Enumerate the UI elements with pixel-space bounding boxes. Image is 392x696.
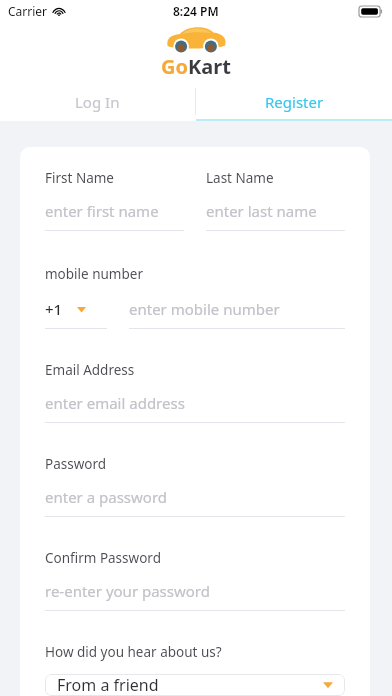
- staticText: 8:24 PM: [173, 3, 219, 19]
- staticText: GoKart: [161, 53, 231, 80]
- staticText: enter last name: [206, 201, 317, 221]
- button[interactable]: Last Name: [206, 169, 345, 231]
- button[interactable]: First Name: [45, 169, 184, 231]
- button[interactable]: Confirm Password: [45, 549, 345, 611]
- staticText: enter mobile number: [129, 299, 280, 319]
- staticText: enter first name: [45, 201, 159, 221]
- staticText: Email Address: [45, 361, 135, 379]
- button[interactable]: From a friend: [45, 674, 345, 696]
- staticText: enter email address: [45, 393, 185, 413]
- button[interactable]: Password: [45, 455, 345, 517]
- staticText: How did you hear about us?: [45, 643, 222, 661]
- button[interactable]: Email Address: [45, 361, 345, 423]
- staticText: Carrier: [8, 3, 48, 19]
- staticText: +1: [45, 299, 63, 319]
- staticText: Password: [45, 455, 107, 473]
- staticText: re-enter your password: [45, 581, 210, 601]
- staticText: enter a password: [45, 487, 168, 507]
- staticText: Register: [265, 92, 324, 112]
- button[interactable]: Register: [196, 82, 392, 121]
- staticText: Confirm Password: [45, 549, 161, 567]
- other: Open dropdown: [323, 680, 333, 690]
- button[interactable]: enter mobile number: [129, 299, 345, 329]
- staticText: mobile number: [45, 265, 143, 283]
- staticText: From a friend: [57, 674, 159, 696]
- staticText: First Name: [45, 169, 114, 187]
- button[interactable]: Log In: [0, 82, 195, 121]
- staticText: Last Name: [206, 169, 274, 187]
- staticText: Log In: [75, 92, 120, 112]
- other: Open dropdown: [77, 305, 86, 314]
- button[interactable]: +1: [45, 299, 107, 329]
